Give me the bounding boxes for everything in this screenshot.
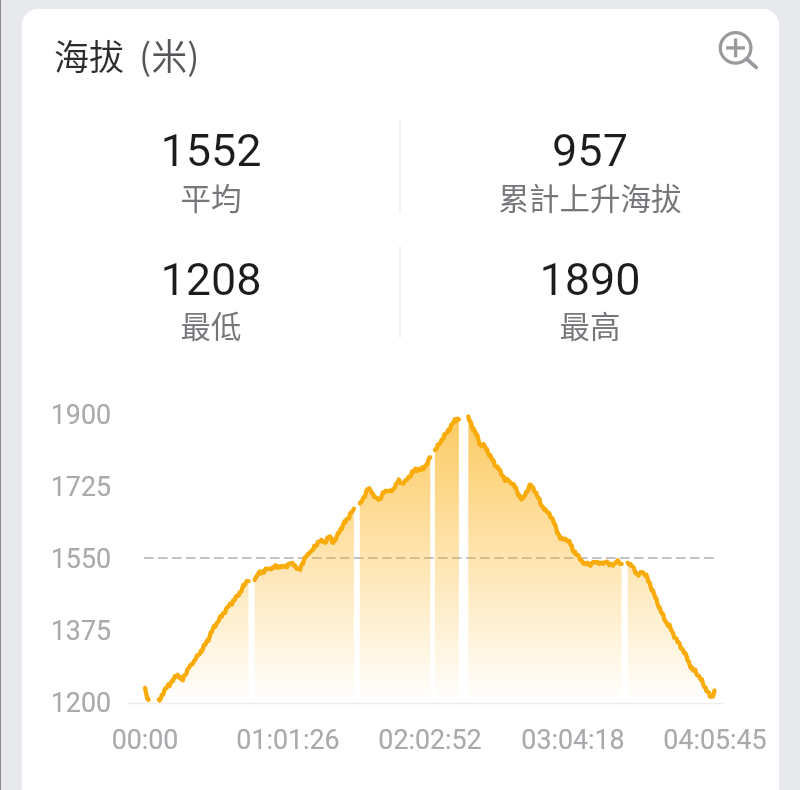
staticText: 02:02:52 (350, 724, 510, 755)
staticText: 03:04:18 (493, 724, 653, 755)
staticText: 1552 (81, 124, 341, 177)
staticText: 累計上升海拔 (440, 175, 740, 219)
staticText: 1725 (40, 471, 111, 502)
button[interactable]: 海拔 (54, 28, 200, 80)
staticText: 1890 (460, 253, 720, 306)
staticText: 04:05:45 (635, 724, 795, 755)
staticText: 1208 (81, 253, 341, 306)
staticText: 最高 (460, 303, 720, 347)
button[interactable]: Zoom in (700, 11, 772, 83)
staticText: 957 (460, 124, 720, 177)
staticText: (米) (139, 28, 200, 80)
staticText: 01:01:26 (208, 724, 368, 755)
staticText: 平均 (81, 175, 341, 219)
staticText: 1375 (40, 615, 111, 646)
staticText: 最低 (81, 303, 341, 347)
staticText: 1200 (40, 687, 111, 718)
staticText: 00:00 (65, 724, 225, 755)
staticText: 1550 (40, 543, 111, 574)
staticText: 海拔 (54, 29, 125, 80)
staticText: 1900 (40, 399, 111, 430)
